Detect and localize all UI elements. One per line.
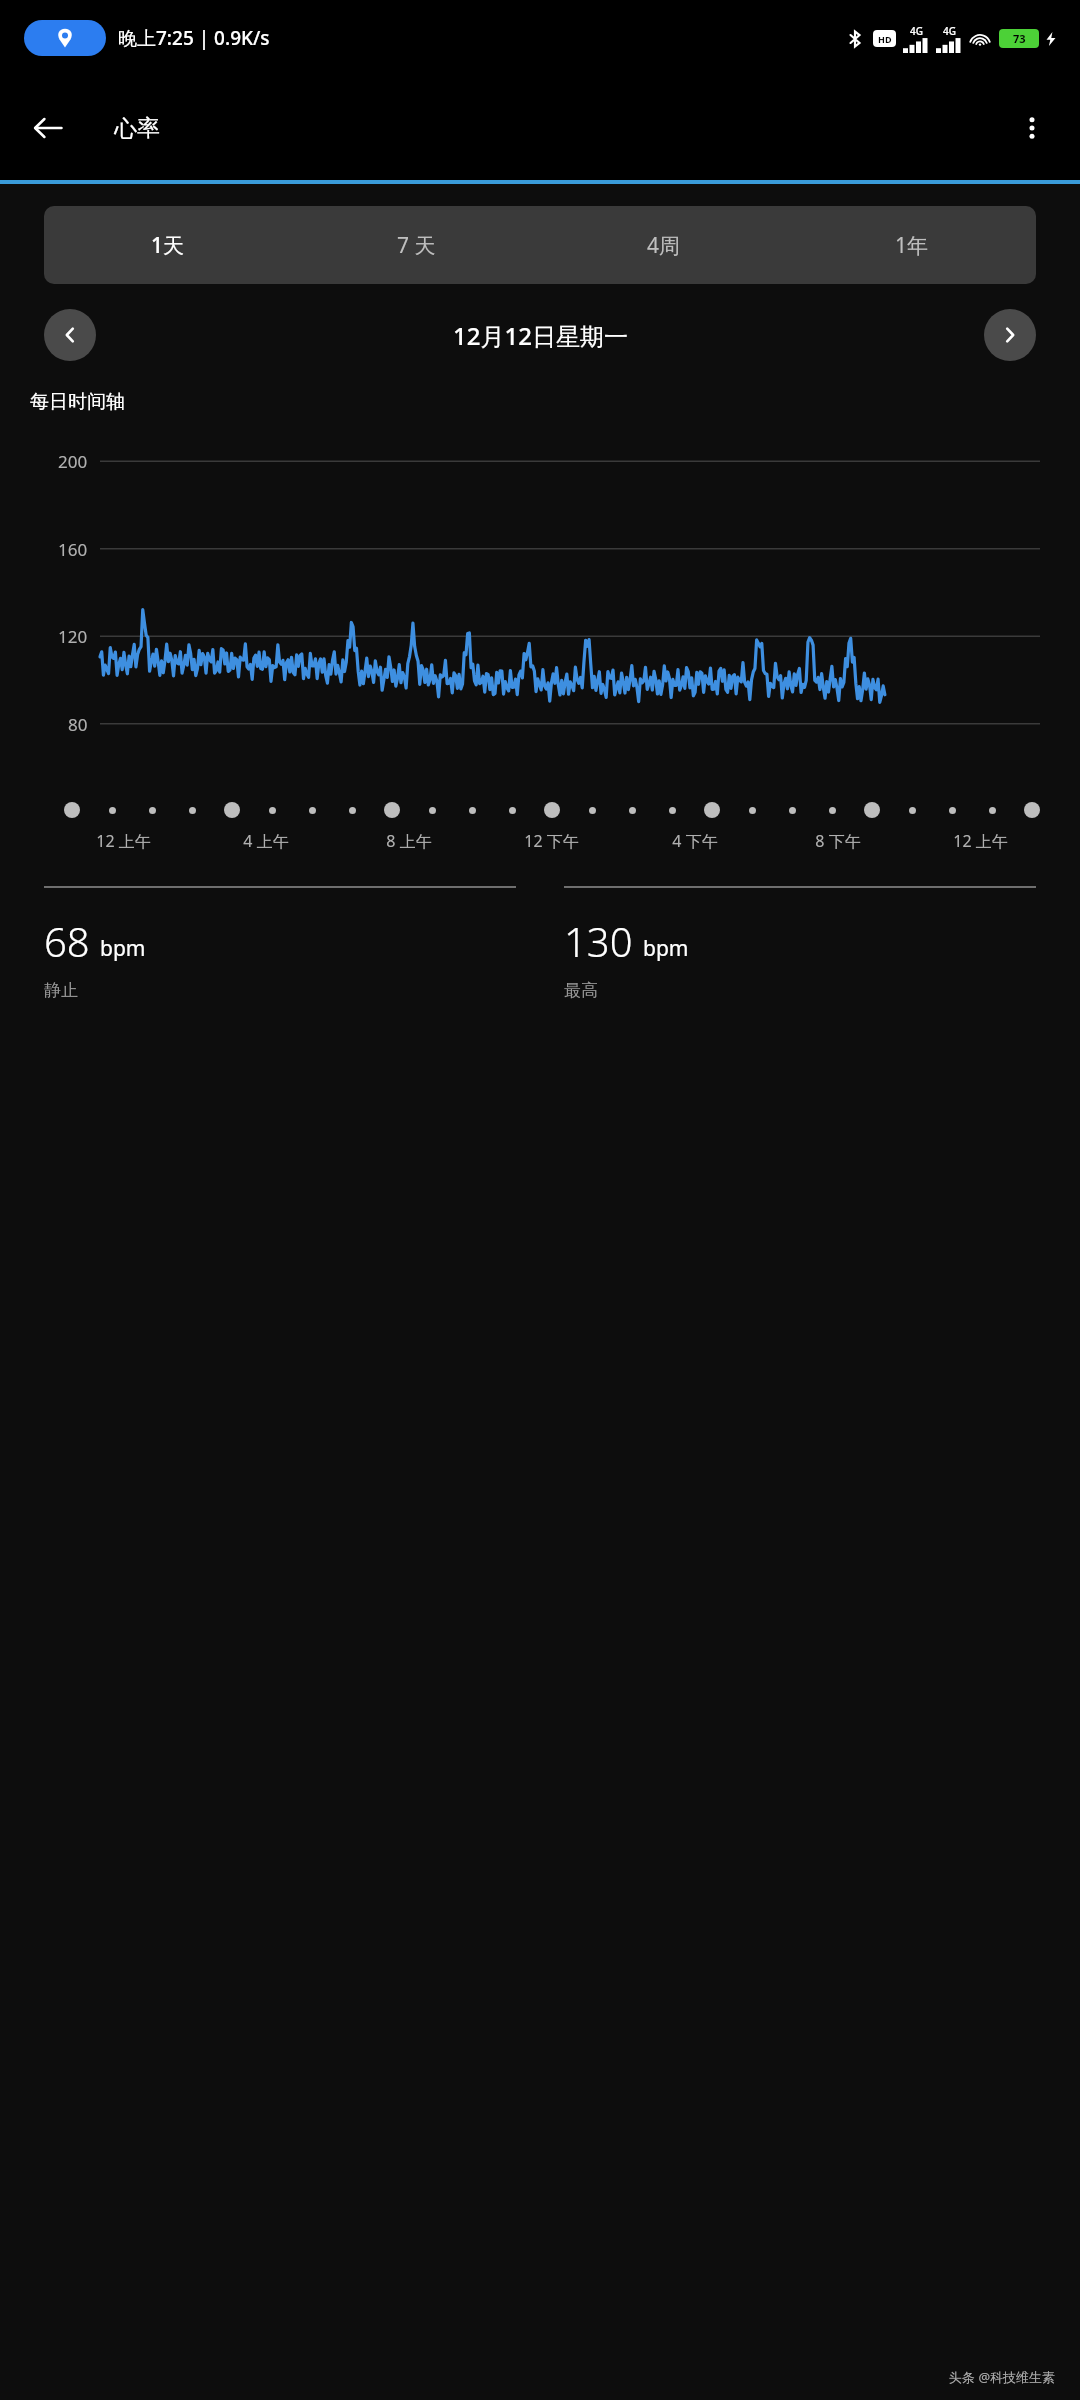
staticText: 4 下午 (672, 830, 718, 852)
staticText: 68 (44, 914, 90, 968)
staticText: 12 下午 (524, 830, 579, 852)
button[interactable]: 4周 (540, 206, 788, 284)
button[interactable]: Previous day (44, 309, 96, 361)
button[interactable]: 1年 (788, 206, 1036, 284)
staticText: 最高 (564, 980, 598, 1001)
staticText: 4G (943, 24, 956, 38)
staticText: 1年 (895, 231, 929, 260)
button[interactable]: More options (1004, 100, 1060, 156)
staticText: 12月12日星期一 (453, 319, 628, 352)
staticText: 12 上午 (953, 830, 1008, 852)
button[interactable]: 1天 (44, 206, 292, 284)
staticText: 7 天 (397, 231, 436, 260)
staticText: bpm (643, 934, 689, 963)
staticText: 160 (58, 538, 88, 561)
button[interactable]: 7 天 (292, 206, 540, 284)
staticText: 73 (1013, 31, 1026, 46)
staticText: bpm (100, 934, 146, 963)
staticText: HD (878, 33, 892, 45)
staticText: 130 (564, 914, 633, 968)
staticText: 心率 (114, 114, 160, 143)
staticText: 200 (58, 450, 88, 473)
staticText: 头条 @科技维生素 (949, 2368, 1056, 2386)
button[interactable]: Next day (984, 309, 1036, 361)
button[interactable]: 68 (44, 886, 516, 1001)
staticText: 晚上7:25 | 0.9K/s (118, 25, 270, 51)
staticText: 80 (68, 713, 88, 736)
staticText: 4G (910, 24, 923, 38)
staticText: 每日时间轴 (30, 390, 125, 414)
button[interactable]: 130 (564, 886, 1036, 1001)
staticText: 8 上午 (386, 830, 432, 852)
staticText: 12 上午 (96, 830, 151, 852)
staticText: 1天 (151, 231, 185, 260)
staticText: 静止 (44, 980, 78, 1001)
staticText: 120 (58, 625, 88, 648)
staticText: 8 下午 (815, 830, 861, 852)
staticText: 4周 (647, 231, 681, 260)
button[interactable]: Back (20, 100, 76, 156)
staticText: 4 上午 (243, 830, 289, 852)
